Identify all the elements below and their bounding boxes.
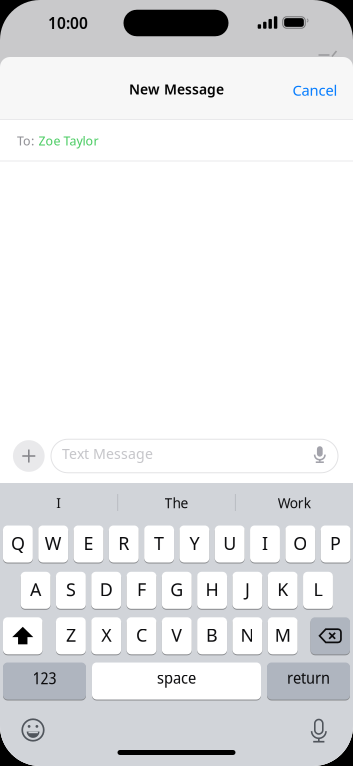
button[interactable]: The	[136, 488, 216, 518]
staticText: S	[66, 577, 76, 601]
button[interactable]: M	[268, 617, 298, 655]
button[interactable]: I	[250, 525, 280, 563]
staticText: Z	[66, 623, 76, 647]
staticText: N	[240, 623, 254, 647]
button[interactable]: Y	[179, 525, 209, 563]
staticText: B	[206, 623, 218, 647]
staticText: K	[277, 577, 288, 601]
staticText: Y	[189, 531, 199, 555]
button[interactable]: I	[19, 488, 99, 518]
staticText: New Message	[129, 79, 224, 99]
button[interactable]: B	[197, 617, 227, 655]
staticText: A	[30, 577, 41, 601]
staticText: T	[154, 531, 164, 555]
staticText: F	[137, 577, 146, 601]
button[interactable]: Work	[254, 488, 334, 518]
staticText: H	[206, 577, 219, 601]
button[interactable]: space	[92, 662, 261, 700]
button[interactable]: E	[73, 525, 103, 563]
staticText: Text Message	[62, 443, 153, 463]
button[interactable]: R	[109, 525, 139, 563]
button[interactable]: L	[303, 571, 333, 609]
staticText: X	[101, 623, 111, 647]
button[interactable]: V	[162, 617, 192, 655]
button[interactable]: T	[144, 525, 174, 563]
staticText: W	[45, 531, 62, 555]
staticText: I	[262, 531, 268, 555]
button[interactable]: Shift	[3, 617, 42, 655]
staticText: M	[275, 623, 291, 647]
button[interactable]: W	[38, 525, 68, 563]
staticText: R	[118, 531, 129, 555]
button[interactable]: U	[215, 525, 245, 563]
button[interactable]: 123	[3, 662, 86, 700]
button[interactable]: Emoji	[13, 710, 53, 750]
button[interactable]: G	[162, 571, 192, 609]
staticText: Zoe Taylor	[38, 132, 98, 149]
button[interactable]: D	[91, 571, 121, 609]
button[interactable]: Delete	[310, 617, 350, 655]
staticText: Work	[278, 494, 311, 512]
staticText: 10:00	[48, 12, 88, 34]
button[interactable]: H	[197, 571, 227, 609]
button[interactable]: Dictate message	[305, 439, 335, 469]
staticText: I	[56, 494, 61, 512]
staticText: To:	[17, 132, 34, 149]
button[interactable]: Dictation	[299, 711, 339, 751]
button[interactable]: Cancel	[280, 70, 350, 110]
staticText: E	[83, 531, 93, 555]
button[interactable]: C	[126, 617, 156, 655]
button[interactable]: A	[21, 571, 51, 609]
button[interactable]: Add attachment	[13, 440, 45, 472]
staticText: P	[330, 531, 341, 555]
staticText: return	[287, 667, 330, 688]
button[interactable]: To:	[17, 120, 353, 160]
staticText: L	[313, 577, 322, 601]
button[interactable]: K	[268, 571, 298, 609]
staticText: U	[223, 531, 236, 555]
staticText: C	[136, 623, 147, 647]
staticText: J	[245, 577, 250, 601]
staticText: Cancel	[292, 80, 337, 100]
button[interactable]: Text Message	[51, 439, 338, 473]
staticText: O	[293, 531, 307, 555]
button[interactable]: J	[232, 571, 262, 609]
staticText: V	[171, 623, 182, 647]
staticText: The	[164, 494, 188, 512]
button[interactable]: Z	[56, 617, 86, 655]
staticText: Q	[11, 531, 25, 555]
staticText: space	[157, 667, 196, 688]
button[interactable]: Q	[3, 525, 33, 563]
staticText: D	[100, 577, 113, 601]
button[interactable]: S	[56, 571, 86, 609]
button[interactable]: F	[126, 571, 156, 609]
button[interactable]: P	[321, 525, 350, 563]
button[interactable]: X	[91, 617, 121, 655]
staticText: G	[170, 577, 183, 601]
button[interactable]: return	[267, 662, 350, 700]
staticText: 123	[32, 667, 56, 689]
button[interactable]: N	[232, 617, 262, 655]
button[interactable]: O	[285, 525, 315, 563]
